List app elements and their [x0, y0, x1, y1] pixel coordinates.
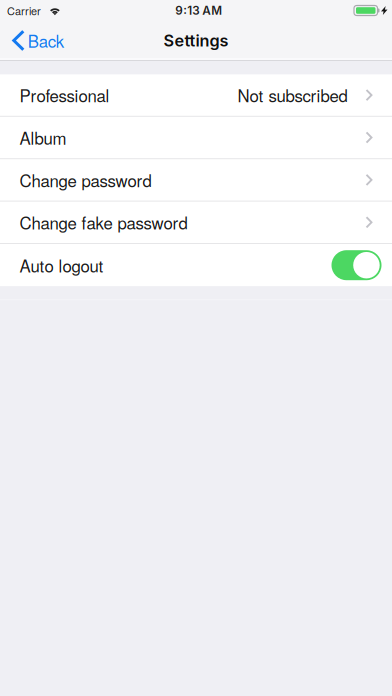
button[interactable]: Change fake password [0, 202, 392, 243]
staticText: Back [28, 28, 64, 53]
staticText: Change password [19, 168, 151, 192]
staticText: Carrier [7, 3, 41, 18]
staticText: Professional [19, 83, 109, 107]
button[interactable]: Auto logout, on [331, 250, 381, 280]
button[interactable]: Change password [0, 159, 392, 201]
staticText: Not subscribed [237, 83, 347, 107]
staticText: Settings [163, 31, 228, 50]
button[interactable]: Professional [0, 74, 392, 116]
staticText: Auto logout [19, 253, 103, 277]
staticText: 9:13 AM [175, 3, 222, 18]
staticText: Change fake password [19, 210, 187, 234]
button[interactable]: Album [0, 117, 392, 158]
staticText: Album [19, 125, 66, 150]
button[interactable]: Back [0, 20, 74, 60]
